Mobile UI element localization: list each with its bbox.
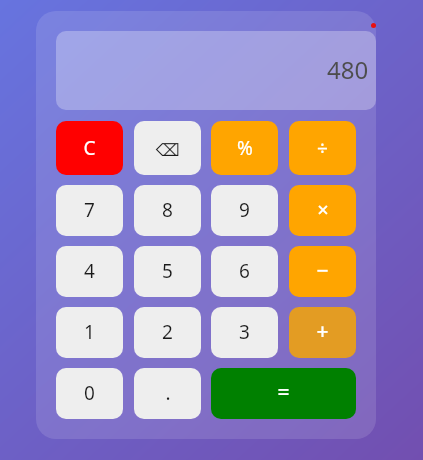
button[interactable]: Backspace: [134, 121, 201, 175]
button[interactable]: ×: [289, 185, 356, 236]
staticText: 7: [84, 197, 95, 223]
staticText: +: [316, 317, 329, 346]
staticText: .: [165, 380, 171, 406]
button[interactable]: .: [134, 368, 201, 419]
staticText: =: [277, 378, 290, 407]
button[interactable]: 2: [134, 307, 201, 358]
staticText: 9: [239, 197, 250, 223]
button[interactable]: 4: [56, 246, 123, 297]
staticText: 8: [162, 197, 173, 223]
staticText: 0: [84, 380, 95, 406]
staticText: 2: [162, 319, 173, 345]
staticText: 3: [239, 319, 250, 345]
staticText: 6: [239, 258, 250, 284]
staticText: ⌫: [155, 140, 180, 160]
staticText: ×: [317, 196, 329, 223]
button[interactable]: 8: [134, 185, 201, 236]
button[interactable]: 3: [211, 307, 278, 358]
staticText: 1: [84, 319, 95, 345]
button[interactable]: 0: [56, 368, 123, 419]
button[interactable]: C: [56, 121, 123, 175]
button[interactable]: +: [289, 307, 356, 358]
button[interactable]: 1: [56, 307, 123, 358]
button[interactable]: %: [211, 121, 278, 175]
button[interactable]: 6: [211, 246, 278, 297]
button[interactable]: 9: [211, 185, 278, 236]
staticText: 480: [327, 53, 369, 86]
button[interactable]: =: [211, 368, 356, 419]
button[interactable]: 7: [56, 185, 123, 236]
button[interactable]: Result display: [56, 31, 376, 110]
button[interactable]: 5: [134, 246, 201, 297]
button[interactable]: ÷: [289, 121, 356, 175]
button[interactable]: −: [289, 246, 356, 297]
staticText: 4: [84, 258, 95, 284]
staticText: −: [316, 256, 329, 285]
staticText: 5: [162, 258, 173, 284]
staticText: %: [237, 135, 253, 161]
staticText: ÷: [317, 135, 328, 161]
staticText: C: [83, 135, 96, 161]
